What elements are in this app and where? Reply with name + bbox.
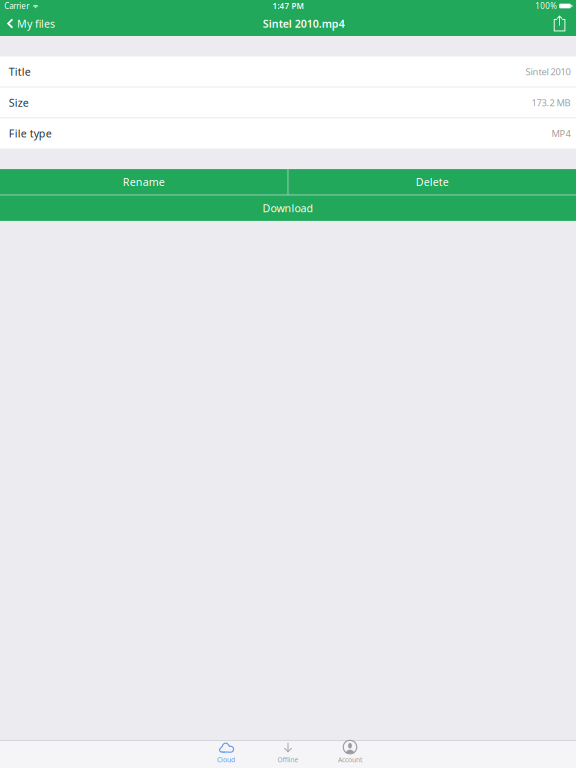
button[interactable]: My files bbox=[0, 11, 61, 35]
staticText: Rename bbox=[123, 175, 165, 189]
button[interactable]: Delete bbox=[288, 169, 576, 195]
button[interactable]: Share bbox=[547, 11, 576, 35]
button[interactable]: Download bbox=[0, 195, 576, 221]
button[interactable]: Cloud bbox=[195, 741, 257, 768]
staticText: Carrier bbox=[4, 1, 29, 11]
staticText: 173.2 MB bbox=[531, 96, 570, 109]
staticText: Title bbox=[9, 65, 31, 79]
staticText: Delete bbox=[416, 175, 449, 189]
staticText: File type bbox=[9, 126, 52, 141]
button[interactable]: Rename bbox=[0, 169, 288, 195]
staticText: Size bbox=[9, 95, 29, 110]
staticText: MP4 bbox=[551, 127, 570, 140]
staticText: Account bbox=[338, 755, 362, 764]
staticText: 100% bbox=[535, 1, 557, 11]
staticText: Download bbox=[262, 201, 313, 215]
staticText: Sintel 2010 bbox=[525, 65, 570, 78]
button[interactable]: Account bbox=[319, 741, 381, 768]
staticText: Cloud bbox=[217, 755, 235, 764]
button[interactable]: Offline bbox=[257, 741, 319, 768]
staticText: My files bbox=[17, 16, 55, 31]
staticText: Offline bbox=[277, 755, 298, 764]
staticText: 1:47 PM bbox=[272, 1, 303, 11]
staticText: Sintel 2010.mp4 bbox=[263, 16, 345, 31]
